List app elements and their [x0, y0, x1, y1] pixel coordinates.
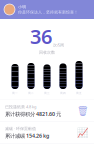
staticText: 周四	[60, 91, 66, 95]
staticText: 回收次数	[39, 50, 55, 55]
button[interactable]: 已投递纸类 4.8 kg	[0, 100, 94, 121]
staticText: 已投递纸类 4.8 kg	[5, 104, 36, 109]
staticText: 减碳 · 环保贡献值	[5, 126, 36, 131]
staticText: 小明	[18, 4, 26, 9]
button[interactable]: 小明	[0, 0, 94, 19]
staticText: 36	[30, 23, 52, 50]
button[interactable]: 减碳 · 环保贡献值	[0, 122, 94, 143]
staticText: 累计减碳 154.26 kg	[5, 132, 49, 139]
staticText: 📈	[77, 127, 89, 138]
staticText: 周二	[28, 91, 34, 95]
staticText: 周三	[44, 91, 50, 95]
staticText: 周一	[12, 91, 18, 95]
staticText: 🗑	[77, 105, 89, 116]
staticText: 次/5周	[53, 42, 64, 47]
staticText: 你是环保达人，坚持就有新惊喜！	[18, 10, 78, 15]
staticText: 周五	[76, 91, 82, 95]
staticText: 累计获得积分 4821.60 元	[5, 110, 61, 118]
